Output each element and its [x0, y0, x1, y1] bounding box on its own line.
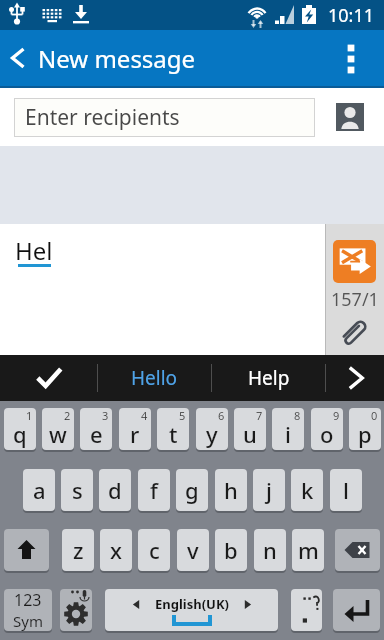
staticText: d: [108, 475, 122, 505]
button[interactable]: [291, 589, 322, 631]
button[interactable]: 2: [42, 408, 74, 450]
staticText: 123: [14, 589, 42, 611]
staticText: q: [13, 419, 27, 449]
staticText: n: [263, 535, 277, 565]
staticText: 0: [371, 408, 378, 423]
staticText: 9: [333, 408, 340, 423]
button[interactable]: z: [62, 529, 94, 571]
staticText: Hello: [131, 365, 178, 391]
staticText: a: [33, 475, 46, 505]
staticText: 8: [294, 408, 301, 423]
button[interactable]: Enter recipients: [14, 98, 315, 137]
button[interactable]: [4, 529, 49, 571]
button[interactable]: 8: [272, 408, 304, 450]
button[interactable]: c: [138, 529, 170, 571]
button[interactable]: Back: [0, 30, 36, 88]
button[interactable]: x: [100, 529, 132, 571]
button[interactable]: [60, 589, 92, 631]
staticText: h: [224, 475, 238, 505]
button[interactable]: 6: [196, 408, 228, 450]
button[interactable]: h: [215, 469, 247, 511]
button[interactable]: g: [176, 469, 208, 511]
staticText: w: [49, 419, 67, 449]
staticText: Help: [248, 365, 290, 391]
staticText: g: [185, 475, 199, 505]
button[interactable]: [105, 589, 278, 631]
staticText: t: [169, 419, 178, 449]
staticText: 4: [141, 408, 148, 423]
staticText: x: [110, 535, 122, 565]
staticText: 5: [179, 408, 186, 423]
staticText: l: [343, 475, 349, 505]
button[interactable]: 5: [157, 408, 189, 450]
button[interactable]: 3: [80, 408, 112, 450]
staticText: 157/1: [331, 287, 379, 312]
button[interactable]: 0: [349, 408, 381, 450]
button[interactable]: More options: [335, 30, 369, 88]
button[interactable]: 4: [119, 408, 151, 450]
button[interactable]: Confirm: [0, 355, 97, 401]
staticText: u: [243, 419, 257, 449]
button[interactable]: l: [330, 469, 362, 511]
staticText: 3: [102, 408, 109, 423]
staticText: English(UK): [155, 595, 229, 613]
staticText: Sym: [13, 611, 43, 631]
button[interactable]: Send message: [333, 240, 376, 283]
button[interactable]: d: [99, 469, 131, 511]
button[interactable]: f: [138, 469, 170, 511]
button[interactable]: k: [291, 469, 323, 511]
button[interactable]: [333, 589, 380, 631]
button[interactable]: 9: [311, 408, 343, 450]
button[interactable]: Help: [212, 355, 325, 401]
staticText: j: [266, 475, 272, 505]
button[interactable]: More suggestions: [326, 355, 384, 401]
button[interactable]: 1: [4, 408, 36, 450]
staticText: m: [298, 535, 319, 565]
staticText: p: [358, 419, 372, 449]
button[interactable]: Attach file: [341, 318, 369, 346]
button[interactable]: s: [61, 469, 93, 511]
staticText: Enter recipients: [25, 103, 180, 132]
staticText: 2: [64, 408, 71, 423]
staticText: z: [73, 535, 84, 565]
staticText: 1: [26, 408, 33, 423]
button[interactable]: Hello: [98, 355, 211, 401]
staticText: Hel: [15, 234, 53, 267]
button[interactable]: [335, 529, 380, 571]
button[interactable]: b: [215, 529, 247, 571]
staticText: y: [206, 419, 218, 449]
staticText: r: [130, 419, 140, 449]
button[interactable]: [4, 589, 52, 631]
button[interactable]: a: [23, 469, 55, 511]
staticText: b: [224, 535, 238, 565]
button[interactable]: v: [177, 529, 209, 571]
button[interactable]: n: [254, 529, 286, 571]
staticText: k: [301, 475, 314, 505]
button[interactable]: j: [253, 469, 285, 511]
staticText: c: [149, 535, 160, 565]
staticText: 7: [256, 408, 263, 423]
staticText: New message: [38, 42, 196, 75]
button[interactable]: 7: [234, 408, 266, 450]
staticText: i: [285, 419, 291, 449]
staticText: 10:11: [328, 3, 375, 28]
staticText: e: [90, 419, 103, 449]
button[interactable]: Choose contacts: [336, 103, 364, 131]
staticText: v: [187, 535, 199, 565]
staticText: f: [150, 475, 158, 505]
staticText: o: [320, 419, 334, 449]
button[interactable]: m: [292, 529, 324, 571]
staticText: s: [72, 475, 83, 505]
staticText: 6: [218, 408, 225, 423]
